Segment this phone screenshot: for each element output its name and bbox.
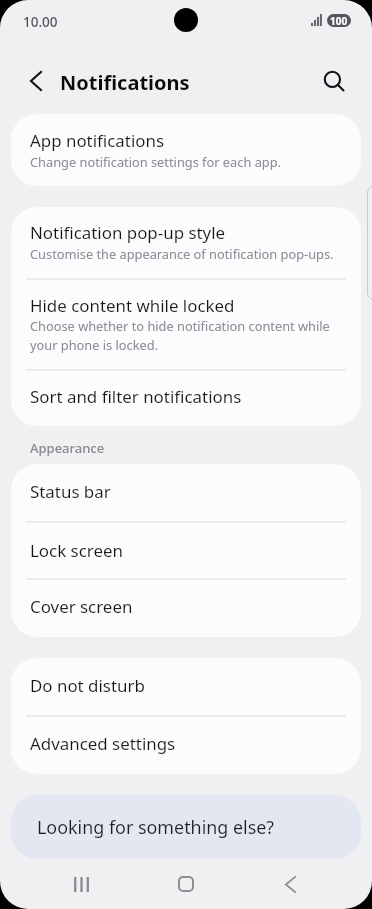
staticText: 10.00	[23, 13, 58, 31]
staticText: Advanced settings	[30, 732, 176, 755]
button[interactable]: App notifications	[11, 114, 361, 186]
staticText: Status bar	[30, 480, 111, 503]
button[interactable]: Status bar	[11, 464, 361, 522]
button[interactable]: Hide content while locked	[11, 279, 361, 370]
button[interactable]: Do not disturb	[11, 658, 361, 716]
staticText: Change notification settings for each ap…	[30, 153, 350, 170]
button[interactable]: Cover screen	[11, 579, 361, 637]
button[interactable]: Looking for something else?	[11, 795, 361, 859]
button[interactable]: Lock screen	[11, 522, 361, 579]
staticText: Hide content while locked	[30, 294, 235, 317]
staticText: Customise the appearance of notification…	[30, 245, 342, 262]
staticText: Lock screen	[30, 539, 123, 562]
staticText: Appearance	[30, 439, 105, 457]
button[interactable]: Navigate up	[14, 59, 58, 103]
button[interactable]: Recent apps	[57, 859, 106, 909]
staticText: App notifications	[30, 129, 165, 152]
staticText: Looking for something else?	[37, 815, 275, 839]
staticText: Notification pop-up style	[30, 221, 226, 244]
staticText: 100	[330, 14, 348, 27]
staticText: Choose whether to hide notification cont…	[30, 317, 334, 354]
staticText: Do not disturb	[30, 674, 145, 697]
staticText: Sort and filter notifications	[30, 385, 242, 408]
staticText: Cover screen	[30, 595, 133, 618]
button[interactable]: Home	[161, 859, 210, 909]
button[interactable]: Sort and filter notifications	[11, 370, 361, 426]
button[interactable]: Advanced settings	[11, 716, 361, 774]
button[interactable]: Back	[266, 859, 315, 909]
button[interactable]: Search	[312, 59, 356, 103]
button[interactable]: Notification pop-up style	[11, 207, 361, 279]
staticText: Notifications	[60, 69, 190, 96]
